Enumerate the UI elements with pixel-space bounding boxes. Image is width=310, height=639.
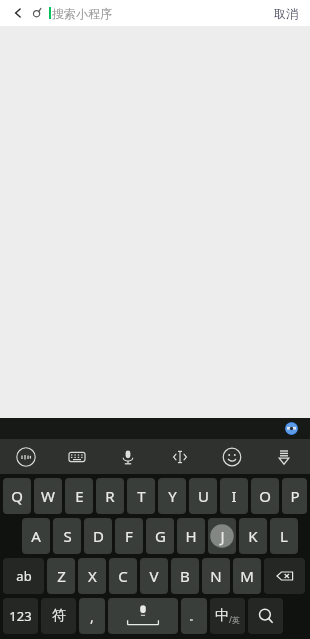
staticText: S	[63, 526, 72, 546]
staticText: H	[185, 526, 197, 546]
staticText: G	[155, 526, 166, 546]
button[interactable]: Account	[285, 422, 298, 435]
button[interactable]: L	[270, 518, 298, 554]
button[interactable]: 取消	[272, 3, 300, 24]
button[interactable]: 中	[210, 598, 245, 634]
button[interactable]: Keyboard layout	[51, 439, 102, 474]
staticText: V	[149, 566, 159, 586]
staticText: E	[75, 486, 84, 506]
button[interactable]: M	[233, 558, 261, 594]
staticText: 搜索小程序	[52, 6, 112, 21]
staticText: O	[259, 486, 271, 506]
button[interactable]: Move cursor	[154, 439, 206, 474]
staticText: I	[231, 486, 237, 506]
button[interactable]: W	[34, 478, 62, 514]
staticText: Z	[57, 566, 66, 586]
button[interactable]: D	[84, 518, 112, 554]
button[interactable]: 123	[3, 598, 38, 634]
staticText: ab	[16, 567, 32, 585]
staticText: T	[137, 486, 146, 506]
button[interactable]: ,	[79, 598, 105, 634]
staticText: 取消	[274, 6, 298, 21]
button[interactable]: V	[140, 558, 168, 594]
button[interactable]: Search	[248, 598, 283, 634]
staticText: B	[180, 566, 190, 586]
staticText: ,	[90, 607, 94, 626]
staticText: D	[93, 526, 104, 546]
button[interactable]: Hide keyboard	[258, 439, 310, 474]
staticText: 符	[52, 607, 66, 625]
staticText: 中	[215, 607, 229, 625]
staticText: M	[240, 566, 254, 586]
button[interactable]: Q	[3, 478, 31, 514]
staticText: R	[105, 486, 115, 506]
staticText: N	[210, 566, 222, 586]
button[interactable]: J	[208, 518, 236, 554]
staticText: P	[290, 486, 300, 506]
button[interactable]: E	[65, 478, 93, 514]
staticText: Y	[168, 486, 177, 506]
button[interactable]: R	[96, 478, 124, 514]
button[interactable]: 。	[181, 598, 207, 634]
button[interactable]: P	[282, 478, 307, 514]
button[interactable]: F	[115, 518, 143, 554]
staticText: U	[198, 486, 209, 506]
button[interactable]: T	[127, 478, 155, 514]
button[interactable]: X	[78, 558, 106, 594]
staticText: K	[248, 526, 258, 546]
staticText: F	[125, 526, 133, 546]
button[interactable]: O	[251, 478, 279, 514]
button[interactable]: G	[146, 518, 174, 554]
button[interactable]: C	[109, 558, 137, 594]
staticText: C	[118, 566, 128, 586]
button[interactable]: I	[220, 478, 248, 514]
button[interactable]: B	[171, 558, 199, 594]
button[interactable]: U	[189, 478, 217, 514]
button[interactable]: H	[177, 518, 205, 554]
button[interactable]: Emoji	[206, 439, 258, 474]
staticText: 123	[9, 607, 32, 625]
button[interactable]: Z	[47, 558, 75, 594]
button[interactable]: Back	[8, 3, 28, 23]
button[interactable]: Backspace	[264, 558, 305, 594]
button[interactable]: Y	[158, 478, 186, 514]
button[interactable]: N	[202, 558, 230, 594]
staticText: L	[280, 526, 288, 546]
staticText: W	[41, 486, 55, 506]
staticText: J	[220, 526, 225, 546]
staticText: A	[31, 526, 41, 546]
button[interactable]: K	[239, 518, 267, 554]
staticText: Q	[11, 486, 23, 506]
button[interactable]: Input method	[0, 439, 51, 474]
button[interactable]: ab	[3, 558, 44, 594]
button[interactable]: 符	[41, 598, 76, 634]
staticText: /英	[229, 614, 240, 625]
button[interactable]: A	[22, 518, 50, 554]
button[interactable]: Space	[108, 598, 178, 634]
staticText: X	[88, 566, 97, 586]
button[interactable]: Voice input	[102, 439, 154, 474]
button[interactable]: S	[53, 518, 81, 554]
staticText: 。	[189, 609, 200, 623]
